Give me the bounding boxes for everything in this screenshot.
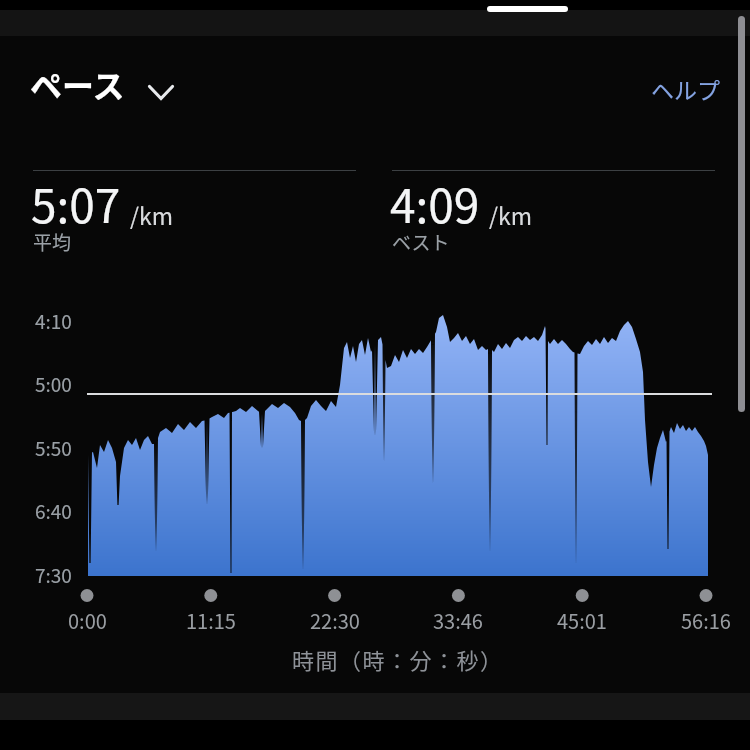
staticText: ペース (30, 61, 125, 107)
button[interactable]: ヘルプ (540, 70, 720, 106)
staticText: 5:00 (35, 370, 72, 398)
staticText: 22:30 (310, 606, 360, 634)
staticText: 6:40 (35, 497, 72, 525)
staticText: 11:15 (186, 606, 236, 634)
staticText: ヘルプ (651, 72, 720, 105)
staticText: 5:07 (31, 170, 121, 237)
staticText: 5:50 (35, 434, 72, 462)
staticText: 4:09 (390, 170, 480, 237)
staticText: 平均 (33, 228, 72, 256)
button[interactable]: ペース (30, 61, 255, 107)
staticText: /km (489, 198, 533, 231)
staticText: 4:10 (35, 307, 72, 335)
staticText: ベスト (392, 228, 450, 256)
staticText: 56:16 (681, 606, 731, 634)
staticText: 45:01 (557, 606, 607, 634)
staticText: 7:30 (35, 561, 72, 589)
staticText: 時間（時：分：秒） (292, 643, 504, 673)
staticText: 0:00 (68, 606, 107, 634)
staticText: 33:46 (433, 606, 483, 634)
staticText: /km (130, 198, 174, 231)
